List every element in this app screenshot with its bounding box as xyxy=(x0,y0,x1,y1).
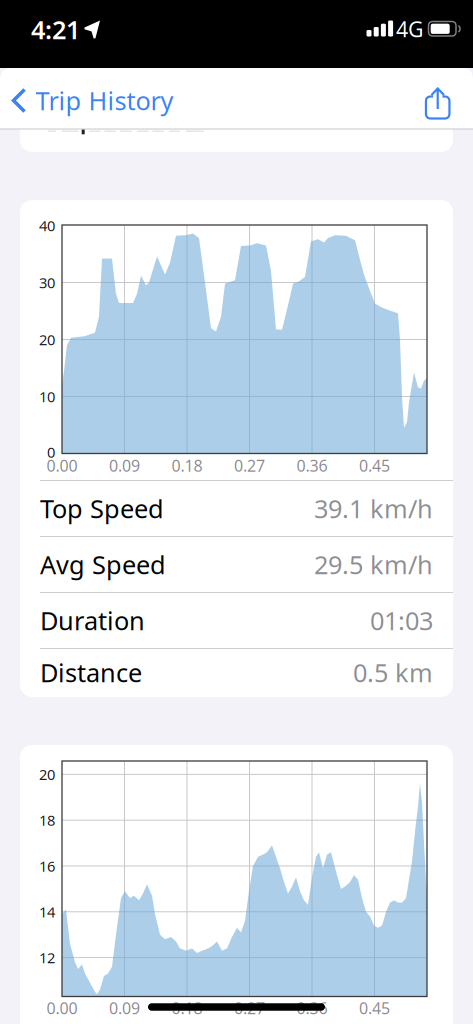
staticText: 20 xyxy=(39,330,55,349)
staticText: Distance xyxy=(40,656,142,689)
staticText: 0.27 xyxy=(234,997,265,1019)
staticText: 39.1 km/h xyxy=(314,492,433,525)
staticText: 0.36 xyxy=(296,997,327,1019)
staticText: 20 xyxy=(39,765,55,784)
staticText: 0.27 xyxy=(234,455,265,476)
staticText: 29.5 km/h xyxy=(314,548,433,581)
staticText: 10 xyxy=(39,387,55,406)
staticText: 01:03 xyxy=(370,604,433,637)
staticText: 0.5 km xyxy=(353,656,433,689)
staticText: 14 xyxy=(39,902,55,921)
staticText: 30 xyxy=(39,273,55,292)
staticText: 0.45 xyxy=(359,997,390,1019)
staticText: Trip History xyxy=(35,84,173,117)
staticText: 0 xyxy=(47,442,55,462)
staticText: Avg Speed xyxy=(40,548,166,581)
staticText: 16 xyxy=(39,856,55,876)
staticText: 0.18 xyxy=(171,997,202,1019)
button[interactable]: Share xyxy=(426,88,450,119)
staticText: 4:21 xyxy=(31,13,80,46)
staticText: 0.45 xyxy=(359,455,390,476)
staticText: 0.09 xyxy=(109,455,140,476)
staticText: 12 xyxy=(39,948,55,967)
staticText: 4G xyxy=(396,15,424,43)
staticText: Duration xyxy=(40,604,145,637)
staticText: 0.18 xyxy=(171,455,202,476)
staticText: Top Speed xyxy=(40,492,164,525)
button[interactable]: Trip History xyxy=(12,84,173,117)
staticText: 18 xyxy=(39,810,55,830)
staticText: 0.00 xyxy=(46,997,77,1019)
staticText: 0.36 xyxy=(296,455,327,476)
staticText: 0.09 xyxy=(109,997,140,1019)
staticText: 40 xyxy=(39,216,55,235)
staticText: 0.00 xyxy=(46,455,77,476)
